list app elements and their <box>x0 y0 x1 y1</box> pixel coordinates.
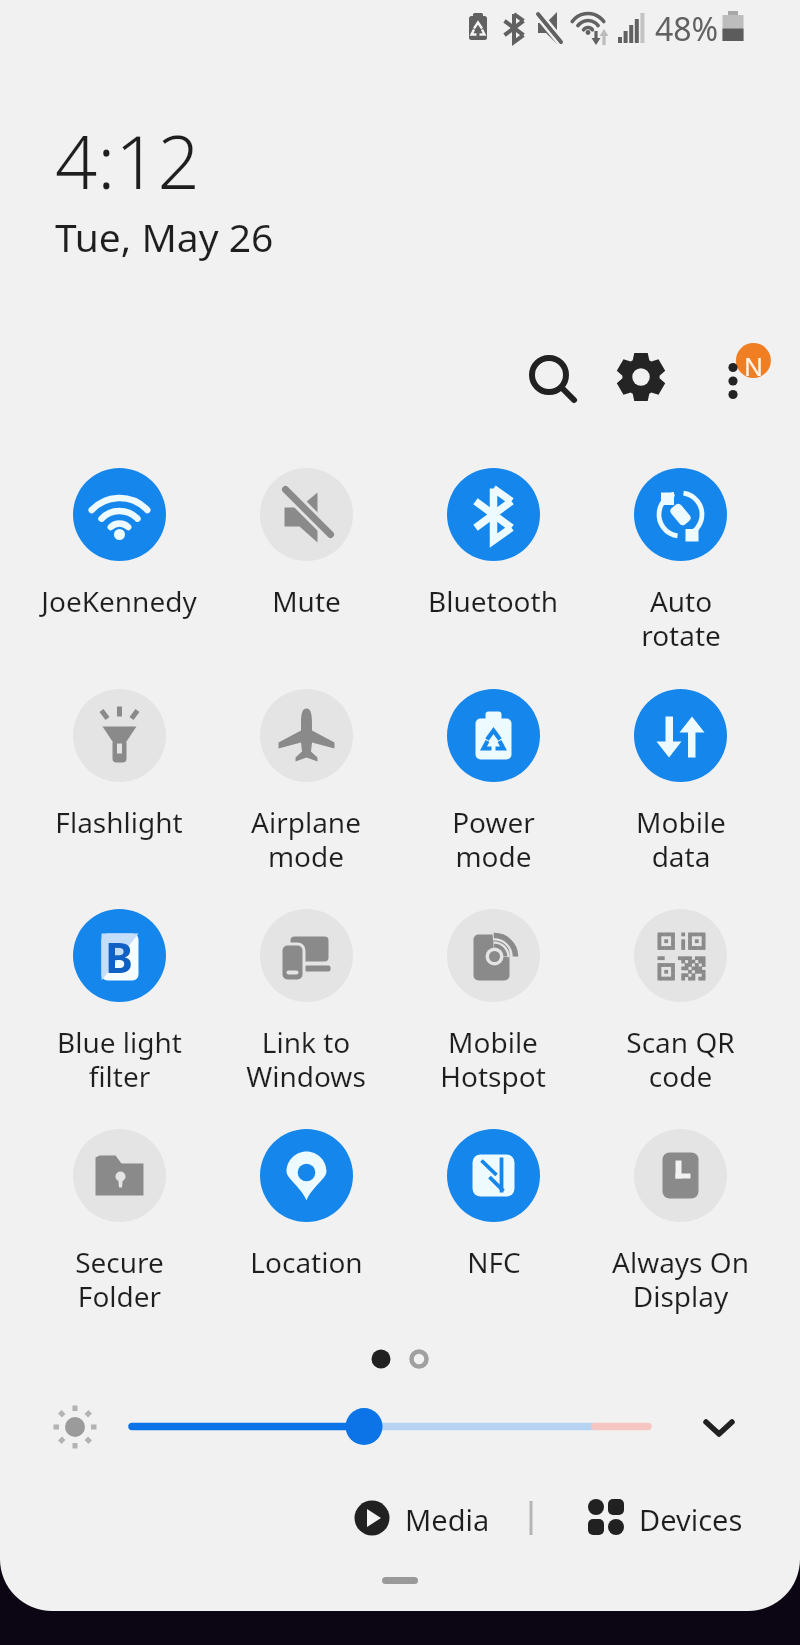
staticText: Always On Display <box>612 1243 749 1316</box>
button[interactable]: Search <box>516 344 586 414</box>
button[interactable]: More options <box>700 344 770 414</box>
button[interactable]: Mute <box>213 460 399 660</box>
staticText: Location <box>250 1243 363 1281</box>
staticText: Mute <box>272 582 341 620</box>
button[interactable]: Auto rotate <box>587 460 773 660</box>
staticText: Secure Folder <box>75 1243 164 1316</box>
staticText: B <box>105 928 133 985</box>
staticText: Devices <box>639 1500 743 1539</box>
staticText: Bluetooth <box>428 582 558 620</box>
button[interactable]: Settings <box>606 344 676 414</box>
button[interactable]: Flashlight <box>26 681 212 881</box>
button[interactable]: Location <box>213 1121 399 1321</box>
staticText: Media <box>405 1500 490 1539</box>
button[interactable]: Airplane mode <box>213 681 399 881</box>
staticText: Mobile data <box>636 803 726 876</box>
button[interactable]: Bluetooth <box>400 460 586 660</box>
staticText: Auto rotate <box>641 582 721 655</box>
staticText: Flashlight <box>55 803 183 841</box>
button[interactable]: JoeKennedy <box>26 460 212 660</box>
staticText: Blue light filter <box>57 1023 182 1096</box>
button[interactable]: B <box>26 901 212 1101</box>
button[interactable]: Mobile data <box>587 681 773 881</box>
button[interactable]: Media <box>348 1489 488 1547</box>
staticText: Tue, May 26 <box>55 210 274 263</box>
staticText: 48% <box>655 7 719 51</box>
staticText: Airplane mode <box>251 803 361 876</box>
button[interactable]: Devices <box>582 1489 747 1547</box>
staticText: Link to Windows <box>246 1023 366 1096</box>
staticText: N <box>744 349 764 383</box>
button[interactable]: NFC <box>400 1121 586 1321</box>
staticText: Scan QR code <box>626 1023 735 1096</box>
staticText: JoeKennedy <box>41 582 197 620</box>
staticText: NFC <box>467 1243 521 1281</box>
button[interactable]: Always On Display <box>587 1121 773 1321</box>
button[interactable]: Link to Windows <box>213 901 399 1101</box>
button[interactable]: Mobile Hotspot <box>400 901 586 1101</box>
staticText: Mobile Hotspot <box>440 1023 546 1096</box>
staticText: 4:12 <box>55 110 200 211</box>
button[interactable]: Scan QR code <box>587 901 773 1101</box>
staticText: Power mode <box>452 803 535 876</box>
button[interactable]: Power mode <box>400 681 586 881</box>
button[interactable]: Secure Folder <box>26 1121 212 1321</box>
